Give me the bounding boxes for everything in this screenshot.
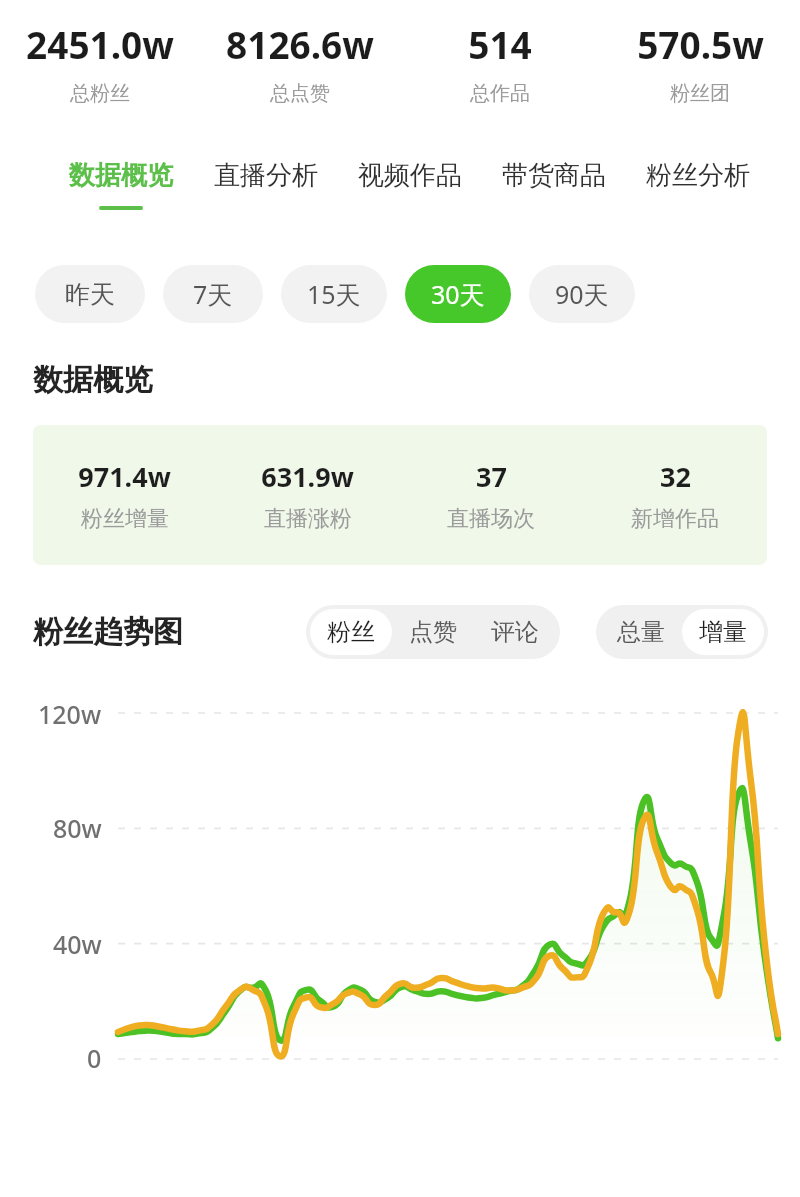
staticText: 971.4w <box>78 458 171 495</box>
button[interactable]: 总量 <box>600 609 682 655</box>
staticText: 7天 <box>193 277 233 311</box>
staticText: 30天 <box>431 277 485 311</box>
staticText: 带货商品 <box>502 159 606 192</box>
button[interactable]: 30天 <box>405 265 511 323</box>
button[interactable]: 数据概览 <box>48 159 193 210</box>
staticText: 粉丝增量 <box>81 505 169 533</box>
button[interactable]: 粉丝 <box>310 609 392 655</box>
staticText: 631.9w <box>261 458 354 495</box>
button[interactable]: 971.4w <box>33 425 767 565</box>
staticText: 40w <box>53 927 102 961</box>
staticText: 37 <box>476 458 507 495</box>
staticText: 总粉丝 <box>70 81 130 106</box>
staticText: 粉丝趋势图 <box>33 613 183 651</box>
staticText: 数据概览 <box>33 361 153 399</box>
button[interactable]: 评论 <box>474 609 556 655</box>
staticText: 总作品 <box>470 81 530 106</box>
staticText: 粉丝团 <box>670 81 730 106</box>
button[interactable]: 粉丝分析 <box>626 159 770 210</box>
button[interactable]: 增量 <box>682 609 764 655</box>
button[interactable]: 90天 <box>529 265 635 323</box>
staticText: 粉丝分析 <box>646 159 750 192</box>
button[interactable]: 15天 <box>281 265 387 323</box>
button[interactable]: 点赞 <box>392 609 474 655</box>
button[interactable]: 视频作品 <box>338 159 482 210</box>
staticText: 增量 <box>699 617 747 647</box>
staticText: 新增作品 <box>631 505 719 533</box>
staticText: 直播分析 <box>214 159 318 192</box>
staticText: 2451.0w <box>26 19 174 69</box>
staticText: 粉丝 <box>327 617 375 647</box>
staticText: 总点赞 <box>270 81 330 106</box>
staticText: 570.5w <box>637 19 764 69</box>
staticText: 评论 <box>491 617 539 647</box>
staticText: 80w <box>53 811 102 845</box>
button[interactable]: 514 <box>400 19 600 106</box>
staticText: 8126.6w <box>226 19 374 69</box>
button[interactable]: 直播分析 <box>193 159 338 210</box>
staticText: 数据概览 <box>69 159 173 192</box>
staticText: 32 <box>660 458 691 495</box>
staticText: 总量 <box>617 617 665 647</box>
button[interactable]: 8126.6w <box>200 19 400 106</box>
staticText: 15天 <box>307 277 361 311</box>
staticText: 0 <box>87 1041 102 1075</box>
staticText: 120w <box>38 697 102 731</box>
staticText: 昨天 <box>65 279 115 310</box>
button[interactable]: 带货商品 <box>482 159 626 210</box>
button[interactable]: 2451.0w <box>0 19 200 106</box>
button[interactable]: 7天 <box>163 265 263 323</box>
staticText: 视频作品 <box>358 159 462 192</box>
button[interactable]: 570.5w <box>600 19 800 106</box>
staticText: 90天 <box>555 277 609 311</box>
staticText: 直播涨粉 <box>264 505 352 533</box>
staticText: 514 <box>468 19 532 69</box>
staticText: 点赞 <box>409 617 457 647</box>
button[interactable]: 昨天 <box>35 265 145 323</box>
staticText: 直播场次 <box>447 505 535 533</box>
